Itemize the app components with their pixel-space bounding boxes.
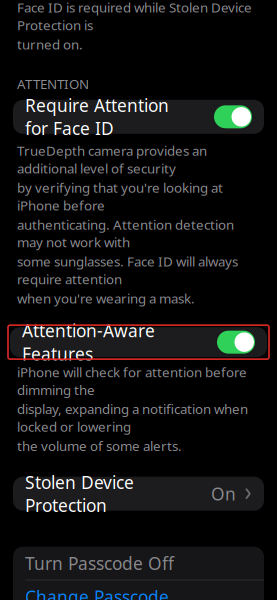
button[interactable]: Require Attention for Face ID — [13, 100, 264, 134]
button[interactable]: Turn Passcode Off — [13, 547, 264, 580]
button[interactable]: Change Passcode — [13, 580, 264, 600]
button[interactable]: Attention-Aware Features — [8, 325, 269, 359]
staticText: the volume of some alerts. — [17, 437, 182, 455]
staticText: ATTENTION — [17, 75, 89, 93]
staticText: display, expanding a notification when l… — [17, 400, 248, 435]
staticText: Face ID is required while Stolen Device … — [17, 0, 252, 34]
staticText: Change Passcode — [25, 585, 169, 600]
staticText: by verifying that you're looking at iPho… — [17, 179, 223, 214]
staticText: Attention-Aware Features — [22, 319, 155, 365]
staticText: Turn Passcode Off — [25, 552, 174, 575]
staticText: when you're wearing a mask. — [17, 289, 195, 307]
staticText: Stolen Device Protection — [25, 471, 134, 517]
staticText: On — [211, 482, 236, 505]
staticText: TrueDepth camera provides an additional … — [17, 142, 207, 177]
staticText: Require Attention for Face ID — [25, 94, 169, 140]
staticText: iPhone will check for attention before d… — [17, 363, 247, 399]
button[interactable]: Stolen Device Protection — [13, 477, 264, 511]
staticText: authenticating. Attention detection may … — [17, 216, 234, 251]
staticText: turned on. — [17, 35, 83, 53]
staticText: some sunglasses. Face ID will always req… — [17, 252, 238, 288]
